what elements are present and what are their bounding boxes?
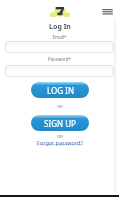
button[interactable]: SIGN UP [31, 115, 89, 131]
staticText: Password* [48, 56, 71, 62]
staticText: Log In [49, 22, 71, 32]
staticText: OR [57, 134, 63, 139]
staticText: SIGN UP [44, 118, 76, 129]
button[interactable]: Forgot password? [35, 137, 85, 148]
staticText: LOG IN [47, 85, 74, 96]
staticText: Forgot password? [37, 139, 83, 146]
staticText: OR [57, 104, 63, 109]
button[interactable]: Menu [99, 3, 119, 21]
button[interactable] [5, 65, 114, 77]
staticText: Email* [52, 34, 67, 40]
button[interactable] [5, 41, 114, 53]
button[interactable]: LOG IN [31, 82, 89, 98]
